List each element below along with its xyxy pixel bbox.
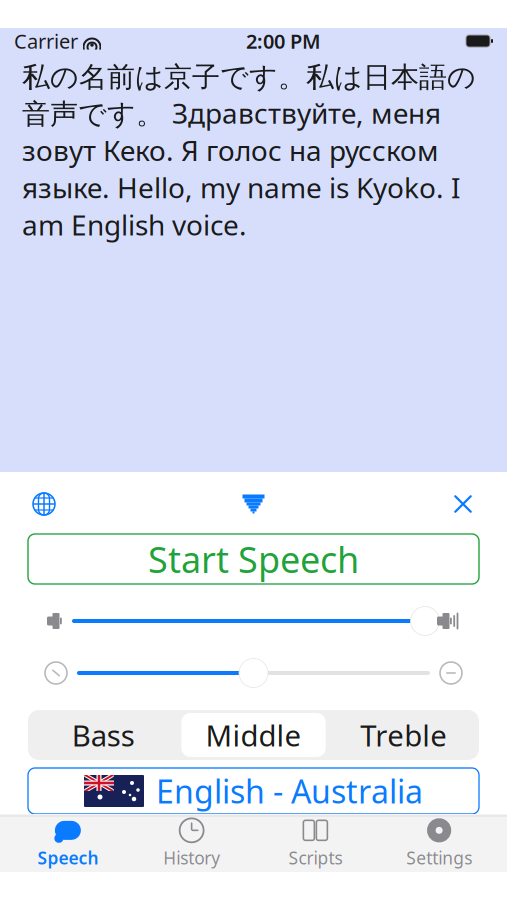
staticText: English - Australia xyxy=(156,770,423,812)
staticText: Speech xyxy=(37,846,98,869)
button[interactable]: Middle xyxy=(178,710,329,760)
staticText: 私の名前は京子です。私は日本語の音声です。 Здравствуйте, меня… xyxy=(22,60,476,243)
button[interactable]: Settings xyxy=(377,816,501,870)
button[interactable]: Language xyxy=(22,484,66,524)
staticText: Middle xyxy=(205,715,301,754)
button[interactable]: English - Australia xyxy=(28,768,479,814)
button[interactable]: Treble xyxy=(329,713,479,757)
button[interactable]: Close xyxy=(441,484,485,524)
staticText: Start Speech xyxy=(148,535,359,583)
button[interactable]: Bass xyxy=(28,713,178,757)
button[interactable]: Speech xyxy=(6,816,130,870)
staticText: 2:00 PM xyxy=(246,28,321,54)
staticText: History xyxy=(163,846,220,869)
button[interactable]: Scripts xyxy=(253,816,377,870)
button[interactable]: Collapse keyboard xyxy=(231,484,275,524)
staticText: Scripts xyxy=(288,846,342,869)
staticText: Bass xyxy=(72,715,135,754)
button[interactable]: Start Speech xyxy=(28,534,479,584)
button[interactable]: History xyxy=(130,816,254,870)
staticText: Settings xyxy=(406,846,472,869)
staticText: Treble xyxy=(360,715,447,754)
staticText: Carrier xyxy=(14,28,78,54)
